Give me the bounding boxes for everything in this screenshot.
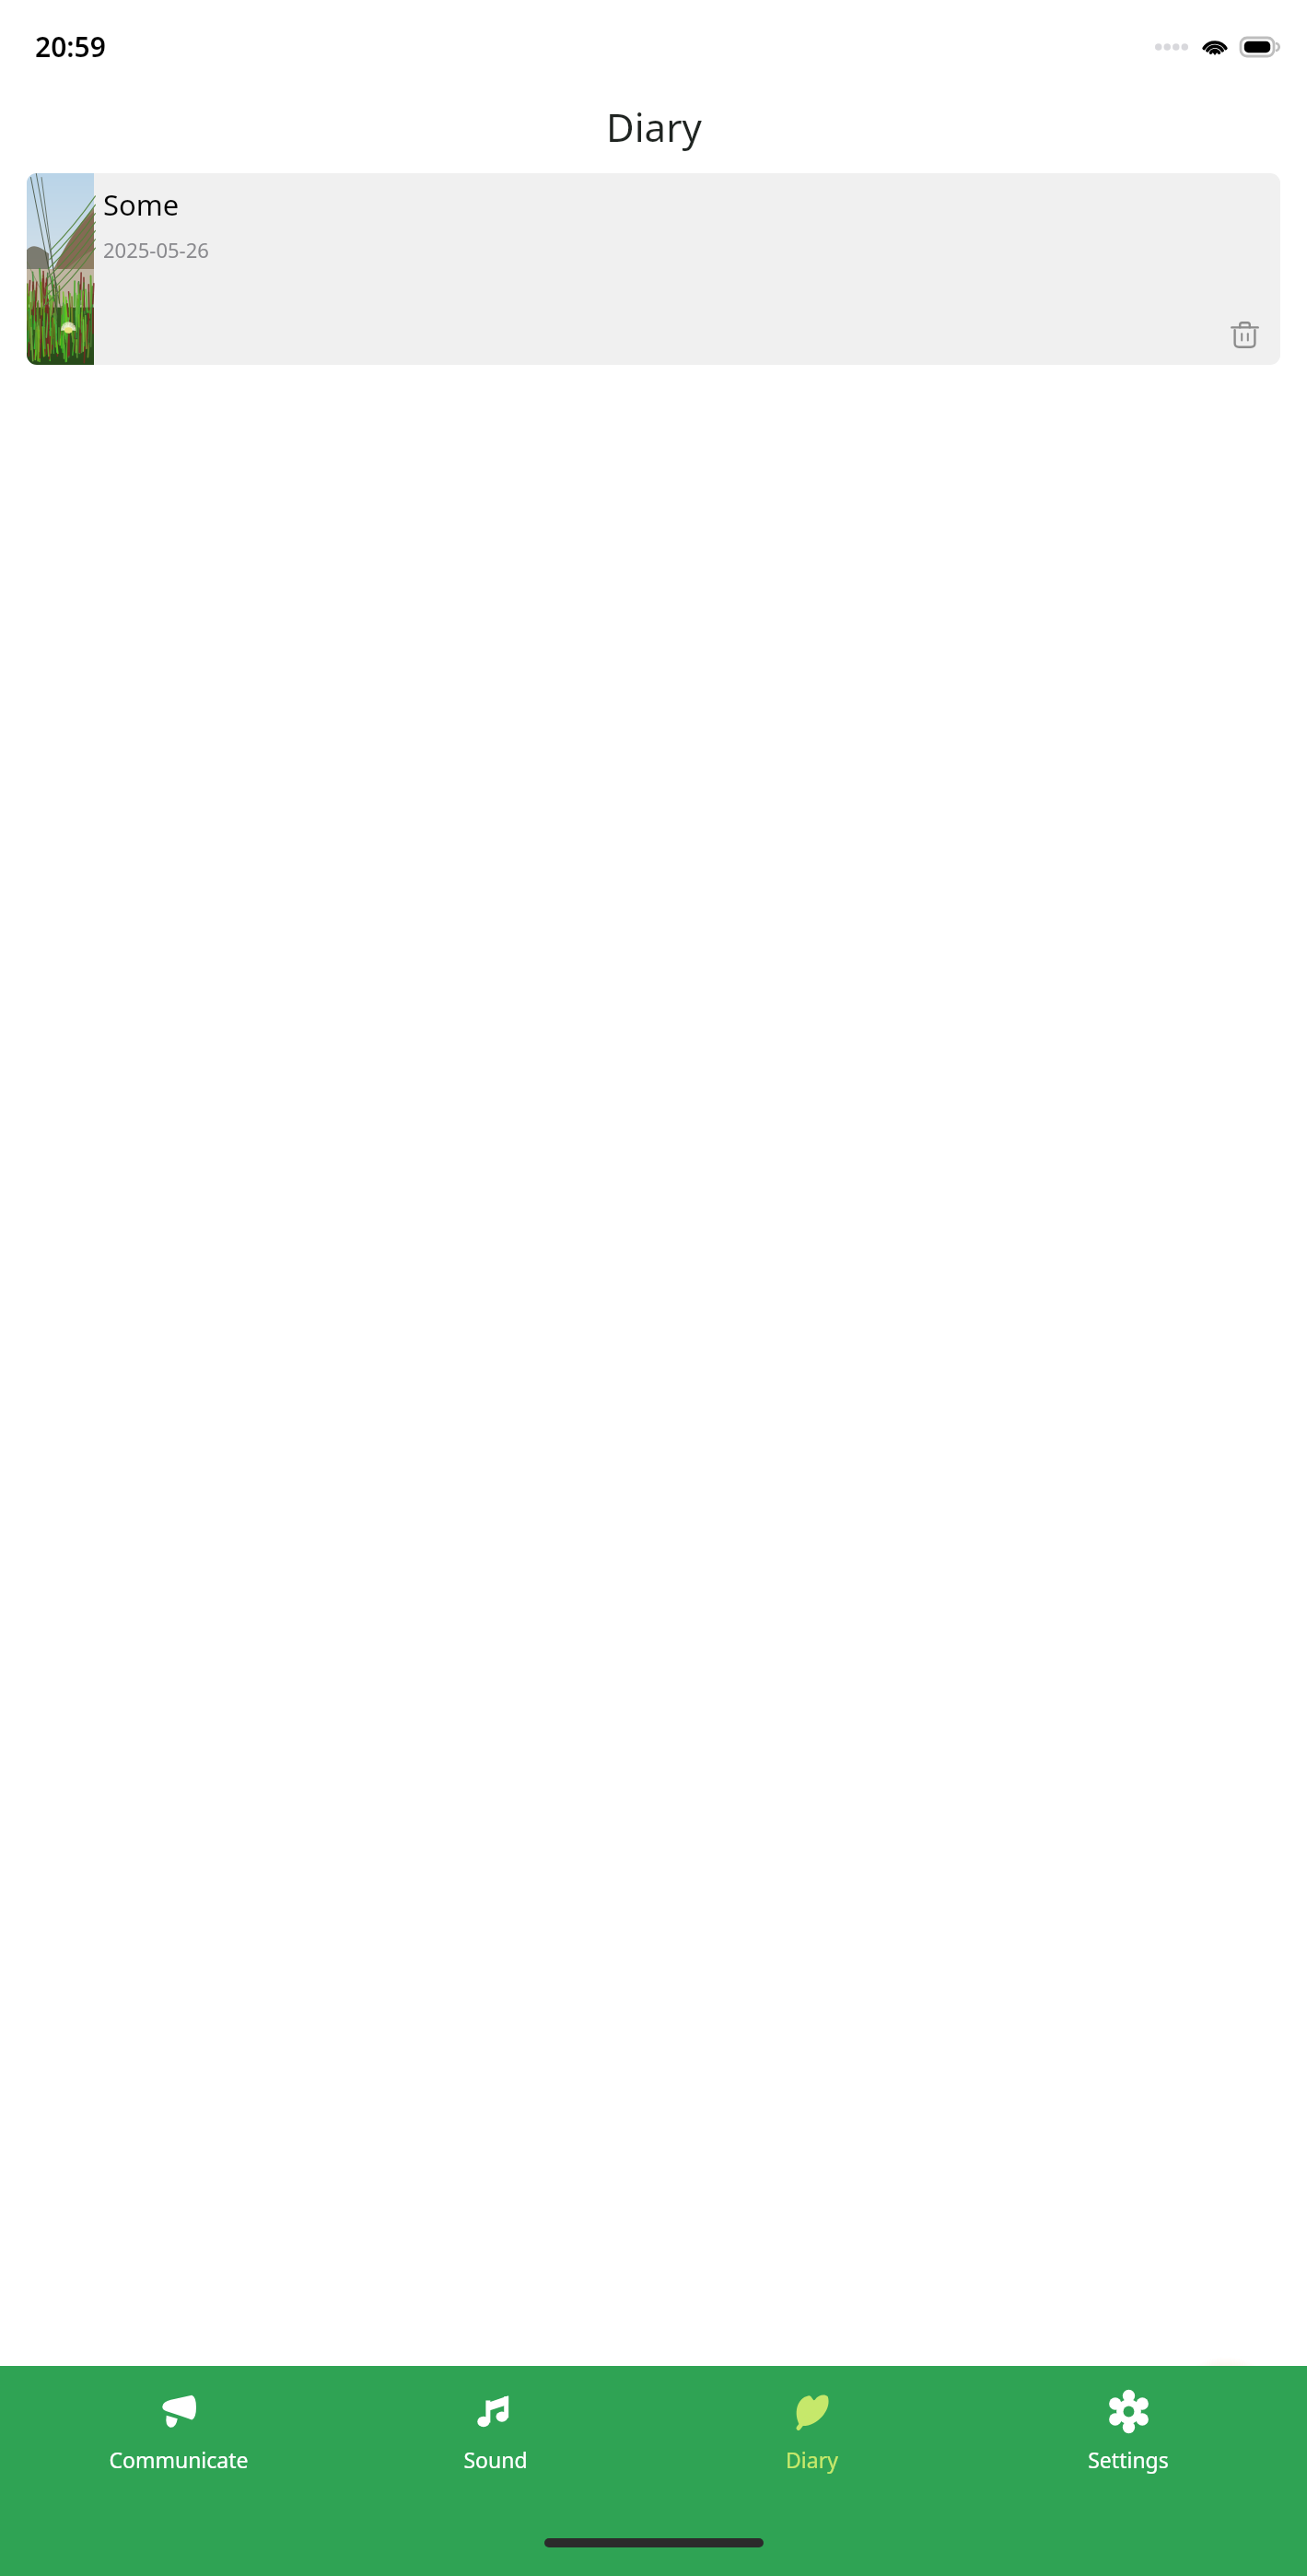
button[interactable]: Some [27,173,1280,365]
button[interactable]: Communicate [41,2366,317,2521]
button[interactable]: Sound [357,2366,634,2521]
button[interactable]: Settings [990,2366,1266,2521]
staticText: Communicate [109,2445,249,2474]
staticText: Sound [463,2445,528,2474]
button[interactable]: Diary [673,2366,950,2521]
staticText: Settings [1088,2445,1169,2474]
staticText: Diary [786,2445,838,2474]
staticText: Some [103,185,180,224]
staticText: 2025-05-26 [103,236,209,263]
staticText: 20:59 [35,28,106,65]
staticText: Diary [606,100,702,153]
button[interactable]: Delete entry [1223,313,1266,356]
